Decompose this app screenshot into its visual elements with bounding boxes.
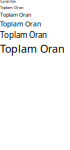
staticText: Toplam Oran — [0, 41, 65, 56]
staticText: Toplam Oran — [0, 5, 23, 10]
staticText: Toplam Oran — [0, 19, 41, 28]
staticText: Toplam Oran — [0, 0, 16, 4]
staticText: Toplam Oran — [0, 29, 47, 40]
staticText: Toplam Oran — [0, 11, 31, 18]
